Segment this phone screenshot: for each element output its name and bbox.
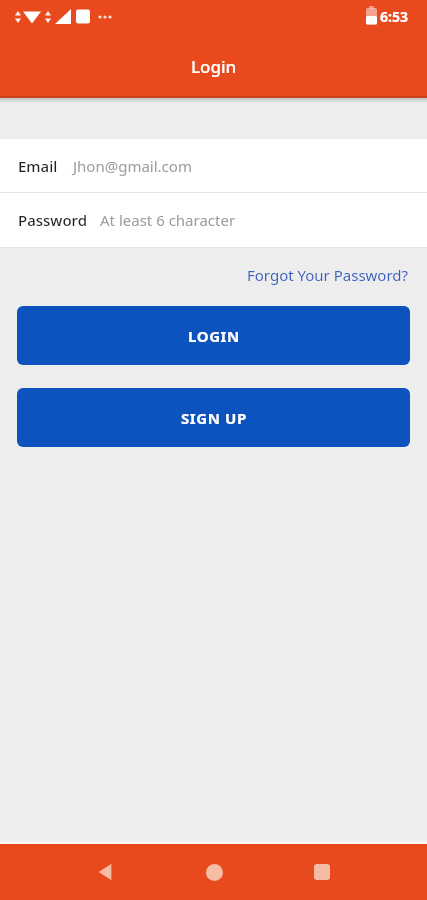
button[interactable]: SIGN UP — [17, 388, 410, 447]
staticText: Forgot Your Password? — [247, 265, 409, 285]
button[interactable] — [268, 844, 376, 900]
staticText: Password — [18, 210, 87, 230]
button[interactable] — [52, 844, 160, 900]
staticText: At least 6 character — [100, 210, 236, 230]
staticText: LOGIN — [188, 326, 240, 346]
button[interactable]: Password — [0, 193, 427, 247]
staticText: 6:53 — [380, 7, 408, 26]
button[interactable] — [160, 844, 268, 900]
button[interactable]: Forgot Your Password? — [247, 265, 427, 285]
staticText: SIGN UP — [181, 408, 247, 428]
staticText: Login — [191, 55, 237, 78]
button[interactable]: Email — [0, 139, 427, 192]
staticText: Jhon@gmail.com — [73, 156, 192, 176]
button[interactable]: LOGIN — [17, 306, 410, 365]
staticText: Email — [18, 156, 58, 176]
